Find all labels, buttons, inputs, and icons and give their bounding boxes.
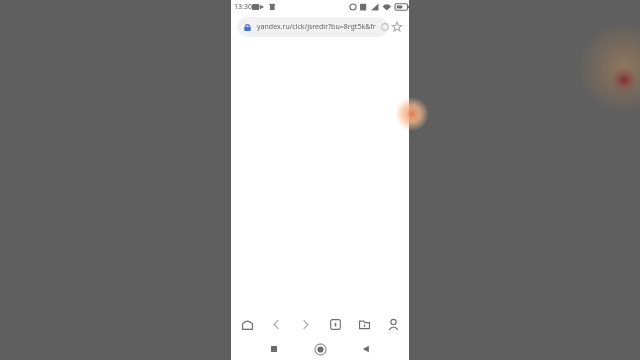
button[interactable]: Forward [292, 311, 318, 337]
button[interactable]: Back [351, 338, 381, 360]
staticText: yandex.ru/clck/jsredir?bu=8rgt5k&fr [257, 22, 376, 32]
button[interactable]: Bookmarks [351, 311, 377, 337]
button[interactable]: Reload [377, 19, 393, 35]
staticText: 13:30 [234, 2, 252, 12]
button[interactable]: Home [305, 338, 335, 360]
button[interactable]: Bookmark [388, 18, 406, 36]
button[interactable]: yandex.ru/clck/jsredir?bu=8rgt5k&fr [237, 17, 388, 37]
button[interactable]: Profile [380, 311, 406, 337]
button[interactable]: Back [263, 311, 289, 337]
button[interactable]: Recents [259, 338, 289, 360]
button[interactable]: Home [234, 311, 260, 337]
button[interactable]: Tabs [322, 311, 348, 337]
